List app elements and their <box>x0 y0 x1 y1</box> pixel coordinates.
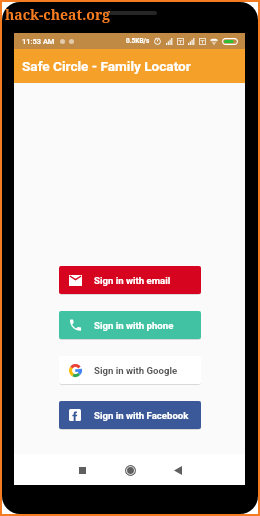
button[interactable]: Sign in with Facebook <box>59 401 201 429</box>
button[interactable]: Sign in with phone <box>59 311 201 339</box>
staticText: Safe Circle - Family Locator <box>22 58 191 74</box>
button[interactable]: Recents <box>69 457 95 483</box>
button[interactable]: Sign in with Google <box>59 356 201 384</box>
staticText: 0.5KB/s <box>126 37 150 45</box>
staticText: hack-cheat.org <box>5 5 111 24</box>
staticText: Sign in with Google <box>94 365 178 376</box>
staticText: Sign in with Facebook <box>94 410 189 421</box>
button[interactable]: Sign in with email <box>59 266 201 294</box>
staticText: Sign in with phone <box>94 320 174 331</box>
staticText: 11:53 AM <box>22 37 55 46</box>
staticText: Sign in with email <box>94 275 171 286</box>
button[interactable]: Home <box>117 457 143 483</box>
button[interactable]: Back <box>165 457 191 483</box>
